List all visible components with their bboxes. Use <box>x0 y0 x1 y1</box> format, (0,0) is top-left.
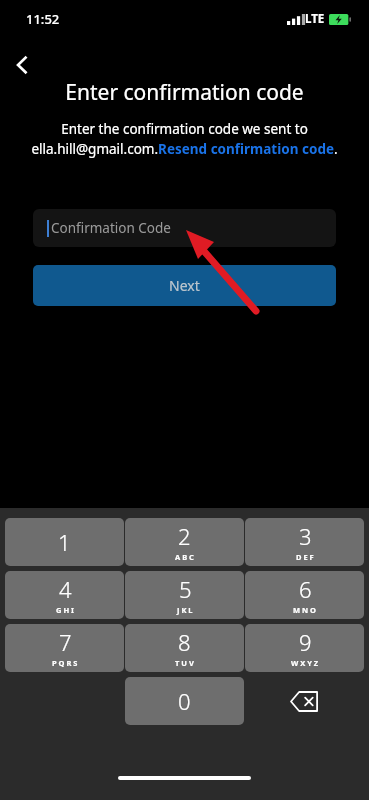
staticText: 5 <box>179 574 192 604</box>
staticText: LTE <box>305 11 325 27</box>
staticText: 9 <box>299 627 312 657</box>
button[interactable]: 7 <box>5 624 124 672</box>
staticText: Confirmation Code <box>51 219 171 237</box>
staticText: J K L <box>177 605 193 615</box>
button[interactable]: 3 <box>245 518 364 566</box>
button[interactable]: Next <box>33 265 336 306</box>
staticText: A B C <box>175 552 194 562</box>
staticText: D E F <box>296 552 314 562</box>
staticText: 7 <box>59 627 72 657</box>
staticText: 11:52 <box>26 10 60 28</box>
staticText: 6 <box>299 574 312 604</box>
button[interactable]: Confirmation Code <box>33 209 336 247</box>
button[interactable]: 1 <box>5 518 124 566</box>
staticText: T U V <box>175 658 194 668</box>
staticText: P Q R S <box>52 658 78 668</box>
button[interactable]: 5 <box>125 571 244 619</box>
staticText: 0 <box>178 686 191 716</box>
staticText: Enter the confirmation code we sent to e… <box>22 120 347 158</box>
button[interactable]: 0 <box>125 677 244 725</box>
staticText: G H I <box>56 605 74 615</box>
staticText: 8 <box>178 627 191 657</box>
staticText: 1 <box>58 527 71 557</box>
button[interactable]: 8 <box>125 624 244 672</box>
button[interactable]: 9 <box>245 624 364 672</box>
button[interactable]: 4 <box>5 571 124 619</box>
staticText: 3 <box>299 521 312 551</box>
staticText: M N O <box>293 605 317 615</box>
staticText: 2 <box>178 521 191 551</box>
button[interactable]: Back <box>6 49 38 81</box>
staticText: W X Y Z <box>291 658 319 668</box>
staticText: Next <box>169 276 200 295</box>
button[interactable]: 6 <box>245 571 364 619</box>
button[interactable]: Delete <box>245 677 364 725</box>
button[interactable]: 2 <box>125 518 244 566</box>
staticText: 4 <box>59 574 72 604</box>
staticText: Enter confirmation code <box>65 78 304 107</box>
